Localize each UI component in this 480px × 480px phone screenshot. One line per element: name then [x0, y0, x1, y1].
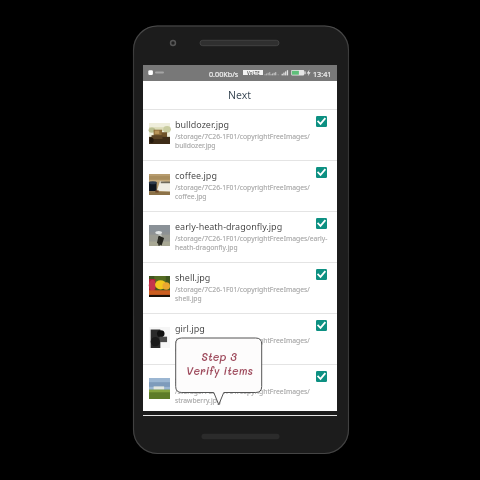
- staticText: 0.00Kb/s: [209, 69, 239, 79]
- staticText: /storage/7C26-1F01/copyrightFreeImages/ …: [175, 183, 333, 201]
- button[interactable]: shell.jpg: [143, 263, 337, 314]
- button[interactable]: bulldozer.jpg: [143, 110, 337, 161]
- staticText: strawberry.jpg: [175, 373, 237, 385]
- staticText: Verify items: [186, 363, 253, 377]
- staticText: coffee.jpg: [175, 169, 217, 181]
- staticText: /storage/7C26-1F01/copyrightFreeImages/ …: [175, 387, 333, 405]
- staticText: girl.jpg: [175, 322, 205, 334]
- button[interactable]: strawberry.jpg: [143, 365, 337, 416]
- staticText: Next: [228, 88, 252, 102]
- button[interactable]: Selected: [316, 167, 327, 178]
- staticText: early-heath-dragonfly.jpg: [175, 220, 283, 232]
- button[interactable]: Selected: [316, 371, 327, 382]
- button[interactable]: coffee.jpg: [143, 161, 337, 212]
- button[interactable]: Selected: [316, 116, 327, 127]
- staticText: Step 3: [201, 349, 237, 363]
- button[interactable]: Selected: [316, 320, 327, 331]
- staticText: /storage/7C26-1F01/copyrightFreeImages/ …: [175, 132, 333, 150]
- staticText: /storage/7C26-1F01/copyrightFreeImages/ …: [175, 285, 333, 303]
- staticText: /storage/7C26-1F01/copyrightFreeImages/e…: [175, 234, 333, 252]
- button[interactable]: early-heath-dragonfly.jpg: [143, 212, 337, 263]
- button[interactable]: Next: [143, 81, 337, 109]
- staticText: 13:41: [313, 69, 332, 79]
- staticText: /storage/7C26-1F01/copyrightFreeImages/ …: [175, 336, 333, 354]
- button[interactable]: Selected: [316, 218, 327, 229]
- staticText: VoLTE: [247, 70, 260, 75]
- button[interactable]: girl.jpg: [143, 314, 337, 365]
- button[interactable]: Selected: [316, 269, 327, 280]
- staticText: shell.jpg: [175, 271, 211, 283]
- staticText: bulldozer.jpg: [175, 118, 230, 130]
